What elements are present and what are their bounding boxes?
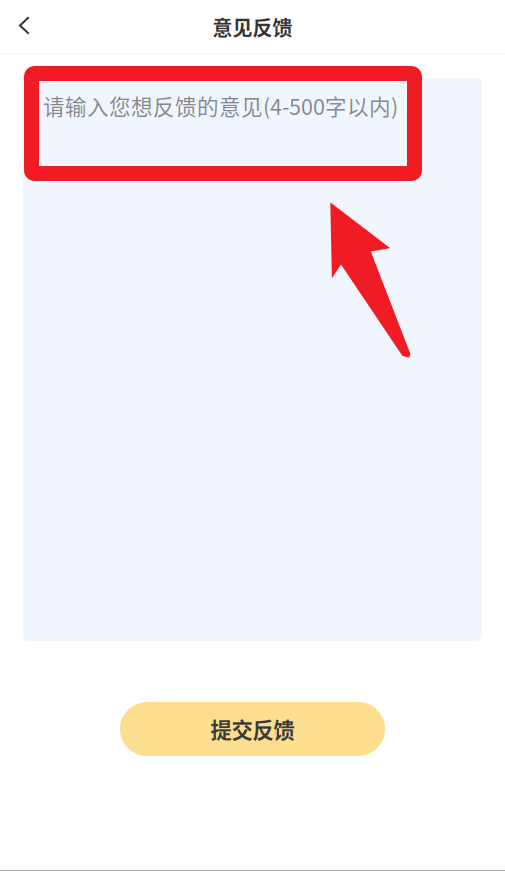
button[interactable]: 提交反馈: [120, 702, 385, 756]
button[interactable]: 请输入您想反馈的意见(4-500字以内): [23, 78, 482, 641]
staticText: 意见反馈: [212, 12, 292, 41]
button[interactable]: Back: [0, 0, 48, 54]
staticText: 提交反馈: [210, 714, 294, 744]
staticText: 请输入您想反馈的意见(4-500字以内): [43, 90, 398, 121]
